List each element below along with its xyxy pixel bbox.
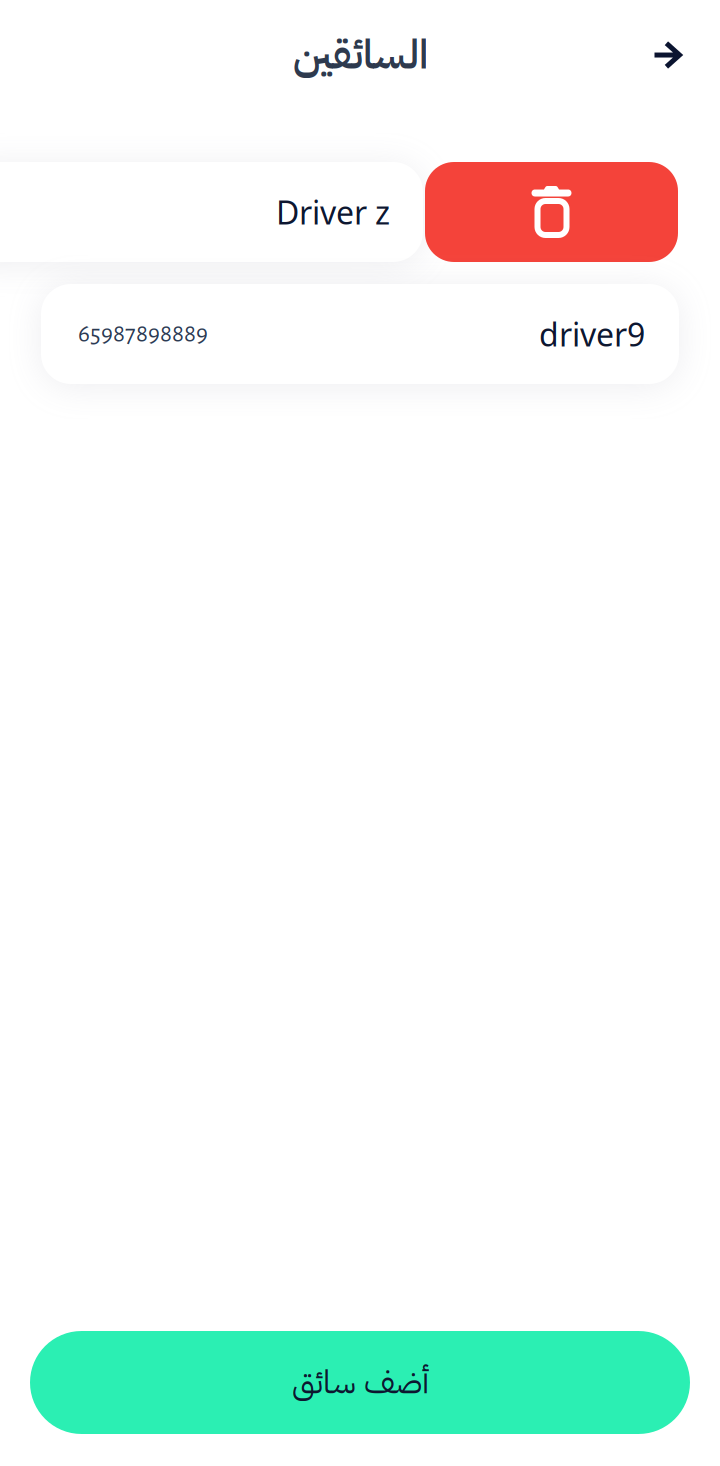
button[interactable]: Back — [625, 13, 709, 97]
staticText: Driver z — [276, 191, 390, 233]
button[interactable]: أضف سائق — [0, 1331, 720, 1434]
button[interactable]: Delete — [425, 162, 678, 262]
staticText: driver9 — [539, 313, 645, 355]
staticText: أضف سائق — [291, 1358, 428, 1406]
staticText: السائقين — [292, 25, 427, 85]
staticText: 65987898889 — [78, 321, 208, 347]
button[interactable]: 65987898889 — [0, 284, 720, 384]
